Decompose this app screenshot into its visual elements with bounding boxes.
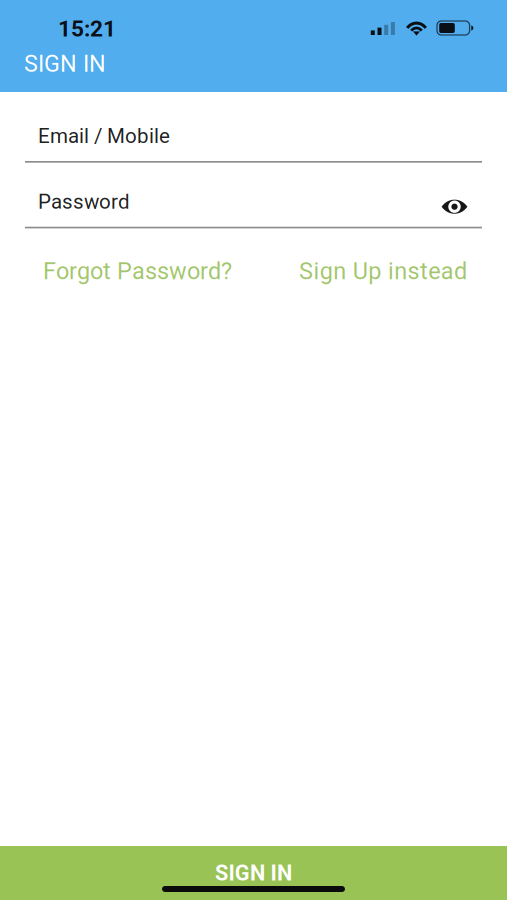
staticText: Sign Up instead — [299, 257, 467, 285]
staticText: Forgot Password? — [43, 257, 232, 285]
staticText: Password — [38, 190, 130, 214]
staticText: SIGN IN — [24, 50, 106, 77]
staticText: Email / Mobile — [38, 124, 170, 148]
button[interactable]: SIGN IN — [0, 846, 507, 900]
staticText: SIGN IN — [215, 860, 292, 886]
button[interactable]: Forgot Password? — [43, 257, 232, 285]
staticText: 15:21 — [58, 15, 116, 42]
button[interactable]: Sign Up instead — [299, 257, 467, 285]
button[interactable]: Show password — [434, 191, 482, 213]
